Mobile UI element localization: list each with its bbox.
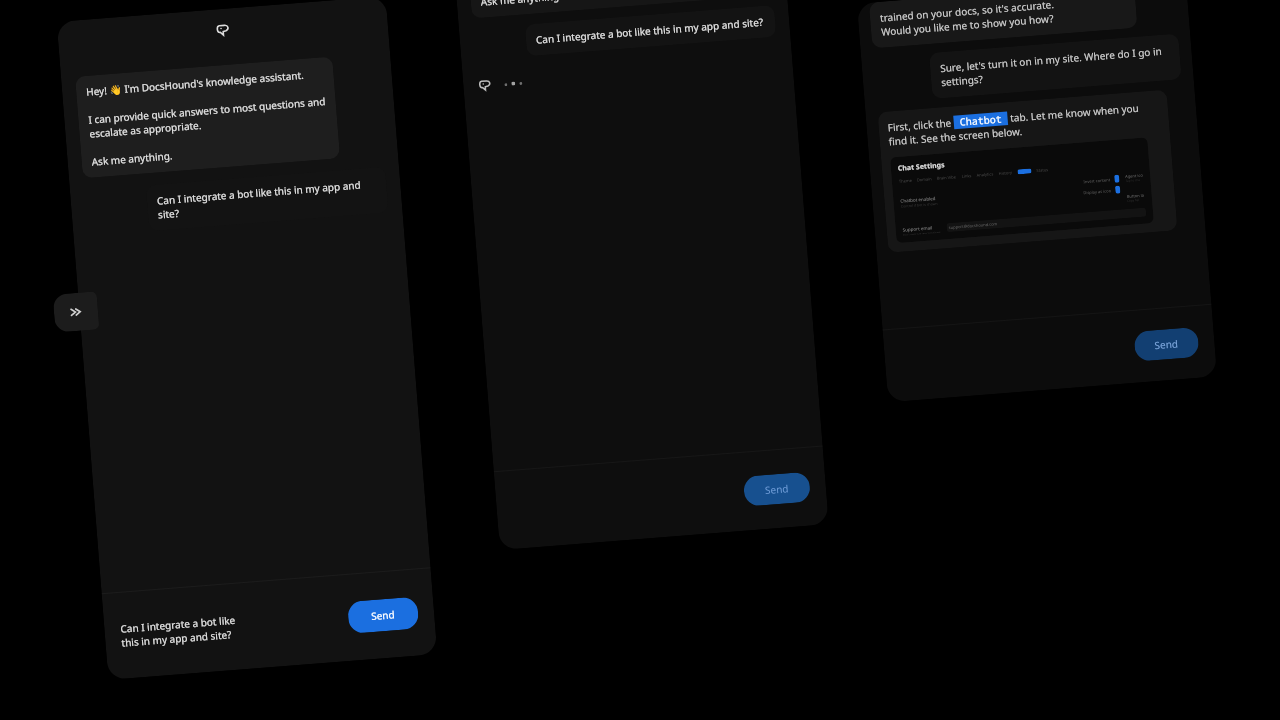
staticText: Theme [899,178,912,184]
staticText: Can I integrate a bot like this in my ap… [120,604,349,650]
staticText: Domain [917,176,932,182]
button[interactable]: Expand chat [53,291,99,333]
staticText: Send [1154,336,1179,352]
other: Assistant is typing [477,77,493,93]
staticText: Status [1036,167,1049,173]
staticText: Chat Settings [897,160,945,174]
staticText: Analytics [976,171,994,178]
staticText: trained on your docs, so it's accurate. … [879,0,1056,39]
staticText: Invert content [1083,177,1111,184]
staticText: Can I integrate a bot like this in my ap… [156,176,378,222]
staticText: Brain Vibe [937,174,957,181]
staticText: support@docshound.com [946,221,998,230]
staticText: Button la [1127,193,1145,199]
staticText: Copy fiel [1127,198,1140,203]
button[interactable]: Send [743,472,811,507]
staticText: Display as icon [1083,188,1111,195]
staticText: Send [371,607,396,623]
staticText: Control if bot is shown [901,201,938,209]
staticText: Send [764,481,789,497]
other: DocsHound assistant [214,21,231,38]
staticText: Tap to cha [1125,178,1141,183]
staticText: Support email [902,224,933,233]
staticText: Can I integrate a bot like this in my ap… [535,15,764,47]
staticText: Agent ico [1125,173,1143,179]
staticText: For contact escalations [903,230,941,236]
staticText: First, click the Chatbot tab. Let me kno… [887,99,1160,148]
staticText: Sure, let's turn it on in my site. Where… [940,43,1171,89]
staticText: Chatbot enabled [900,195,937,204]
staticText: Ask me anything. [480,0,562,9]
staticText: Hey! 👋 I'm DocsHound's knowledge assista… [86,66,329,169]
staticText: History [998,170,1013,176]
staticText: Links [961,173,972,179]
button[interactable]: Send [1133,327,1200,362]
button[interactable]: Send [347,596,419,634]
